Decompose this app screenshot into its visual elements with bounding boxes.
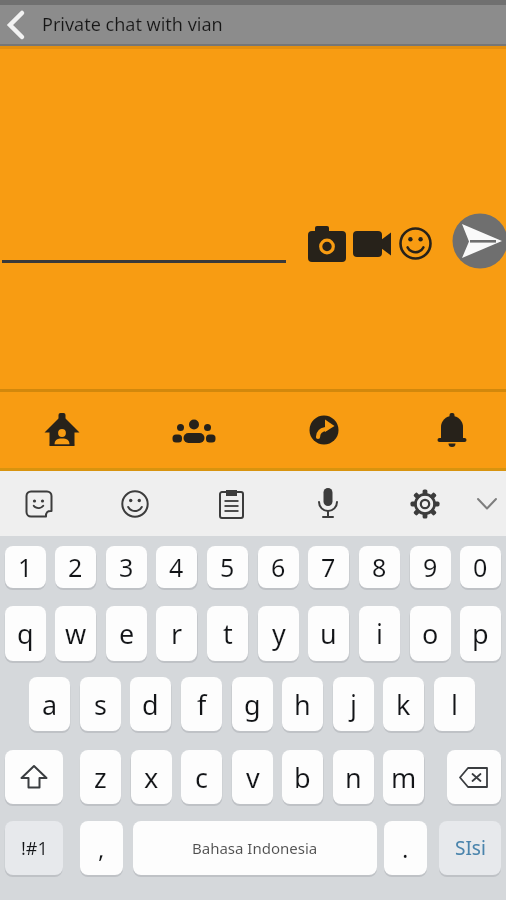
staticText: p [472, 615, 489, 652]
button[interactable] [303, 479, 353, 529]
button[interactable]: p [460, 606, 501, 661]
staticText: a [42, 686, 58, 723]
staticText: 7 [321, 550, 336, 584]
button[interactable]: j [333, 677, 374, 731]
button[interactable]: x [131, 750, 172, 804]
staticText: d [142, 686, 159, 723]
button[interactable]: t [207, 606, 248, 661]
staticText: , [98, 832, 105, 865]
button[interactable]: f [181, 677, 222, 731]
button[interactable]: 7 [308, 546, 349, 588]
button[interactable] [350, 224, 394, 264]
button[interactable]: w [55, 606, 96, 661]
button[interactable]: k [383, 677, 424, 731]
button[interactable] [156, 392, 232, 468]
staticText: Bahasa Indonesia [192, 838, 318, 858]
button[interactable]: Bahasa Indonesia [133, 821, 377, 875]
staticText: w [65, 615, 87, 652]
button[interactable]: l [434, 677, 475, 731]
button[interactable]: s [80, 677, 121, 731]
button[interactable]: d [130, 677, 171, 731]
staticText: 5 [220, 550, 235, 584]
staticText: o [422, 615, 439, 652]
staticText: h [294, 686, 311, 723]
button[interactable]: q [5, 606, 46, 661]
button[interactable] [397, 225, 433, 261]
button[interactable]: !#1 [5, 821, 63, 875]
button[interactable]: y [258, 606, 299, 661]
button[interactable] [468, 481, 506, 527]
staticText: t [223, 615, 233, 652]
staticText: i [376, 615, 383, 652]
staticText: v [246, 759, 260, 796]
button[interactable]: SIsi [439, 821, 501, 875]
button[interactable]: 1 [5, 546, 46, 588]
staticText: k [396, 686, 411, 723]
staticText: !#1 [21, 836, 48, 861]
staticText: m [391, 759, 417, 796]
button[interactable] [5, 750, 63, 804]
staticText: 4 [169, 550, 184, 584]
staticText: 9 [423, 550, 438, 584]
button[interactable]: g [232, 677, 273, 731]
staticText: y [272, 615, 286, 652]
staticText: z [94, 759, 107, 796]
staticText: f [197, 686, 207, 723]
staticText: 2 [68, 550, 83, 584]
button[interactable]: 2 [55, 546, 96, 588]
staticText: u [320, 615, 337, 652]
staticText: Private chat with vian [42, 12, 223, 37]
staticText: g [244, 686, 261, 723]
button[interactable] [206, 479, 256, 529]
button[interactable]: h [282, 677, 323, 731]
button[interactable]: b [282, 750, 323, 804]
staticText: 0 [473, 550, 488, 584]
button[interactable] [452, 213, 506, 269]
button[interactable]: o [410, 606, 451, 661]
button[interactable]: a [29, 677, 70, 731]
button[interactable]: , [80, 821, 123, 875]
button[interactable]: n [333, 750, 374, 804]
button[interactable] [14, 479, 64, 529]
button[interactable]: c [181, 750, 222, 804]
button[interactable] [400, 479, 450, 529]
staticText: 8 [372, 550, 387, 584]
button[interactable]: i [359, 606, 400, 661]
staticText: e [119, 615, 135, 652]
button[interactable]: r [156, 606, 197, 661]
button[interactable] [286, 392, 362, 468]
staticText: r [171, 615, 183, 652]
button[interactable]: . [384, 821, 427, 875]
staticText: s [94, 686, 107, 723]
staticText: c [195, 759, 208, 796]
button[interactable]: m [383, 750, 424, 804]
button[interactable]: v [232, 750, 273, 804]
button[interactable]: z [80, 750, 121, 804]
button[interactable]: u [308, 606, 349, 661]
button[interactable] [305, 222, 349, 266]
button[interactable] [447, 750, 501, 804]
button[interactable]: 8 [359, 546, 400, 588]
button[interactable]: 5 [207, 546, 248, 588]
staticText: n [345, 759, 362, 796]
staticText: . [402, 832, 409, 865]
staticText: j [350, 686, 357, 723]
button[interactable]: 0 [460, 546, 501, 588]
button[interactable]: 4 [156, 546, 197, 588]
staticText: 1 [18, 550, 33, 584]
button[interactable] [24, 392, 100, 468]
button[interactable] [0, 4, 34, 46]
button[interactable]: 9 [410, 546, 451, 588]
button[interactable] [414, 392, 490, 468]
staticText: 6 [271, 550, 286, 584]
staticText: b [294, 759, 311, 796]
staticText: SIsi [455, 835, 486, 861]
staticText: l [451, 686, 458, 723]
staticText: q [17, 615, 34, 652]
button[interactable] [110, 479, 160, 529]
staticText: 3 [119, 550, 134, 584]
staticText: x [144, 759, 159, 796]
button[interactable]: e [106, 606, 147, 661]
button[interactable]: 3 [106, 546, 147, 588]
button[interactable]: 6 [258, 546, 299, 588]
